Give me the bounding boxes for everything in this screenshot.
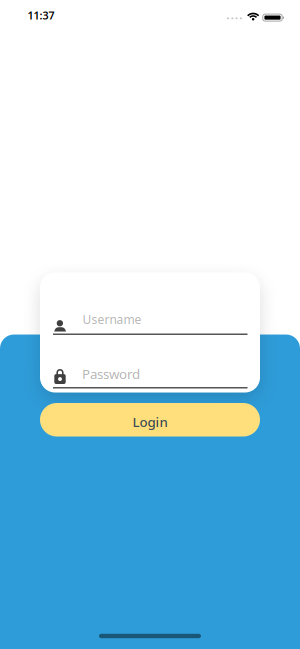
staticText: Login [132, 413, 167, 431]
staticText: Username [82, 311, 141, 327]
staticText: Password [82, 365, 140, 383]
button[interactable]: Login [40, 403, 260, 436]
staticText: 11:37 [27, 8, 54, 22]
